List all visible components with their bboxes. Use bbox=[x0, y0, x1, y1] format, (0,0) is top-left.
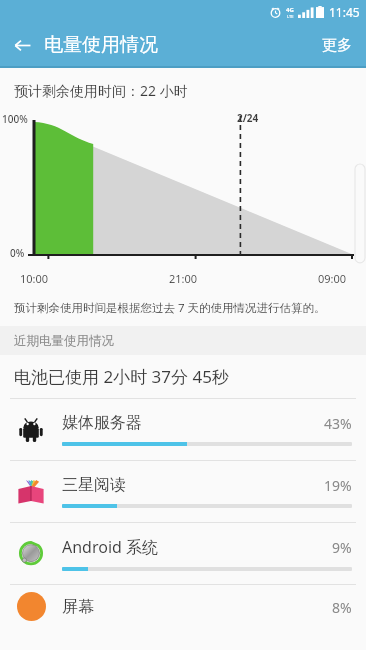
button[interactable]: Back bbox=[0, 24, 44, 66]
button[interactable]: 更多 bbox=[308, 26, 366, 65]
staticText: 屏幕 bbox=[62, 597, 94, 617]
staticText: 电量使用情况 bbox=[44, 33, 158, 57]
button[interactable]: Android 系统 bbox=[0, 523, 366, 585]
staticText: 43% bbox=[324, 414, 352, 433]
button[interactable]: 三星阅读 bbox=[0, 461, 366, 523]
staticText: 4G bbox=[286, 6, 294, 14]
staticText: 9% bbox=[332, 538, 352, 557]
staticText: 11:45 bbox=[329, 4, 360, 20]
staticText: 8% bbox=[332, 598, 352, 617]
button[interactable]: 屏幕 bbox=[0, 585, 366, 625]
staticText: 近期电量使用情况 bbox=[14, 333, 114, 349]
staticText: 三星阅读 bbox=[62, 475, 126, 495]
staticText: LTE bbox=[287, 14, 294, 19]
staticText: 媒体服务器 bbox=[62, 413, 142, 433]
staticText: 更多 bbox=[322, 36, 352, 55]
staticText: 预计剩余使用时间：22 小时 bbox=[14, 81, 188, 100]
staticText: Android 系统 bbox=[62, 536, 159, 558]
staticText: 0% bbox=[10, 246, 25, 260]
staticText: 电池已使用 2小时 37分 45秒 bbox=[14, 365, 229, 388]
button[interactable]: 媒体服务器 bbox=[0, 399, 366, 461]
staticText: 100% bbox=[2, 112, 28, 126]
staticText: 10:00 bbox=[20, 271, 49, 286]
staticText: 19% bbox=[324, 476, 352, 495]
staticText: 09:00 bbox=[318, 271, 347, 286]
staticText: 2/24 bbox=[237, 111, 259, 125]
staticText: 预计剩余使用时间是根据您过去 7 天的使用情况进行估算的。 bbox=[14, 300, 326, 316]
staticText: 21:00 bbox=[169, 271, 198, 286]
